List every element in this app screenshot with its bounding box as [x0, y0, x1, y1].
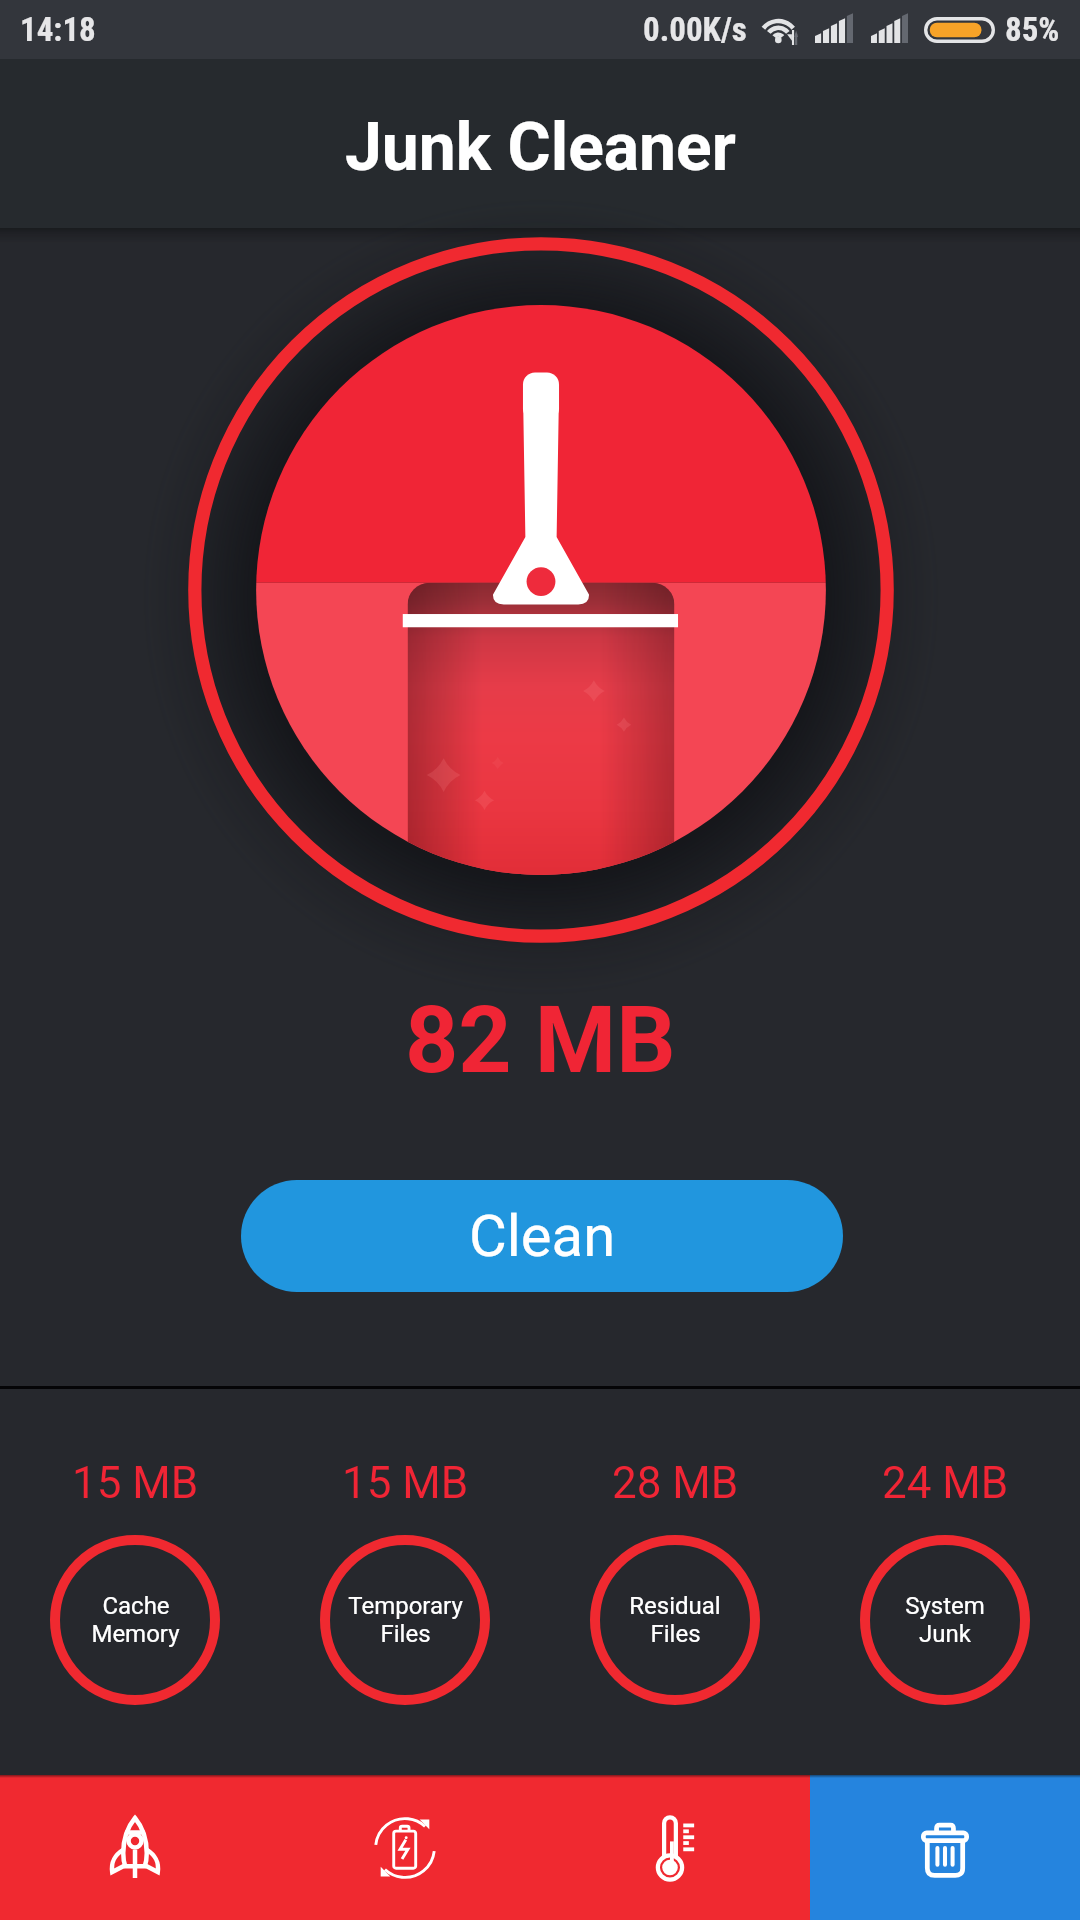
- staticText: 14:18: [20, 10, 96, 49]
- button[interactable]: Junk cleaner: [810, 1775, 1080, 1920]
- button[interactable]: 24 MB: [810, 1389, 1080, 1775]
- staticText: 82 MB: [405, 986, 676, 1095]
- staticText: Files: [650, 1620, 701, 1648]
- button[interactable]: Battery saver: [270, 1775, 540, 1920]
- staticText: Memory: [91, 1620, 180, 1648]
- staticText: 15 MB: [72, 1457, 199, 1509]
- staticText: Cache: [102, 1592, 170, 1620]
- staticText: 85%: [1005, 10, 1060, 49]
- button[interactable]: Clean: [241, 1180, 843, 1292]
- staticText: Clean: [469, 1202, 616, 1270]
- staticText: Junk: [919, 1620, 971, 1648]
- staticText: Files: [380, 1620, 431, 1648]
- staticText: 15 MB: [342, 1457, 469, 1509]
- button[interactable]: Phone boost: [0, 1775, 270, 1920]
- staticText: 24 MB: [882, 1457, 1009, 1509]
- staticText: Temporary: [348, 1592, 463, 1620]
- button[interactable]: 28 MB: [540, 1389, 810, 1775]
- button[interactable]: 15 MB: [270, 1389, 540, 1775]
- button[interactable]: 15 MB: [0, 1389, 270, 1775]
- staticText: System: [905, 1592, 985, 1620]
- button[interactable]: CPU cooler: [540, 1775, 810, 1920]
- staticText: Residual: [629, 1592, 721, 1620]
- staticText: Junk Cleaner: [345, 109, 736, 186]
- staticText: 28 MB: [612, 1457, 739, 1509]
- staticText: 0.00K/s: [643, 10, 747, 49]
